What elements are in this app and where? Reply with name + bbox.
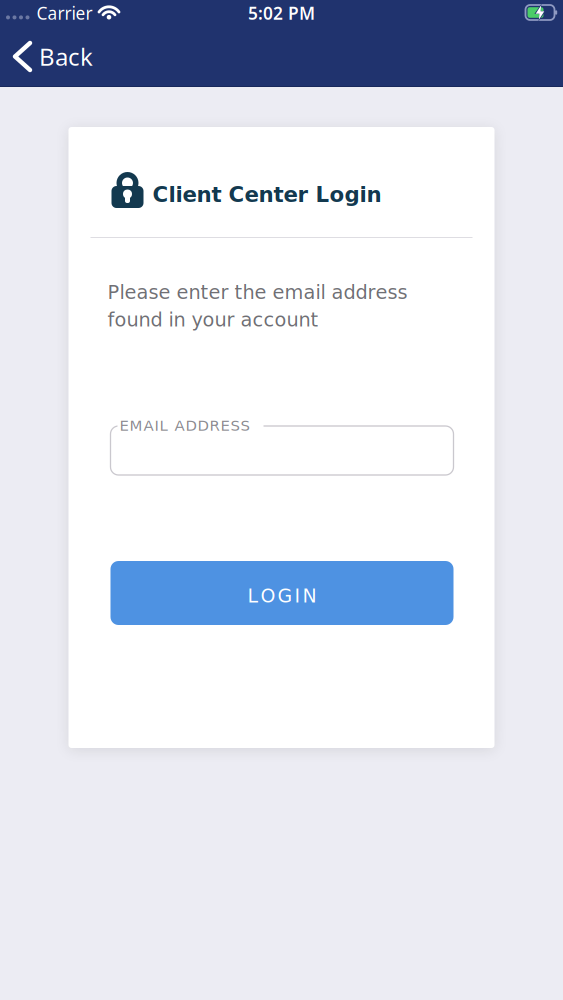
staticText: Back (39, 41, 93, 72)
staticText: Carrier (36, 1, 92, 24)
button[interactable]: Login (110, 561, 453, 625)
staticText: 5:02 PM (248, 1, 315, 24)
staticText: Client Center Login (152, 182, 381, 207)
button[interactable]: Email address (110, 426, 453, 475)
staticText: Please enter the email address (107, 281, 407, 303)
staticText: E M A I L A D D R E S S (119, 417, 249, 434)
staticText: L O G I N (247, 585, 316, 607)
button[interactable]: Back (0, 33, 93, 80)
staticText: found in your account (107, 308, 318, 331)
